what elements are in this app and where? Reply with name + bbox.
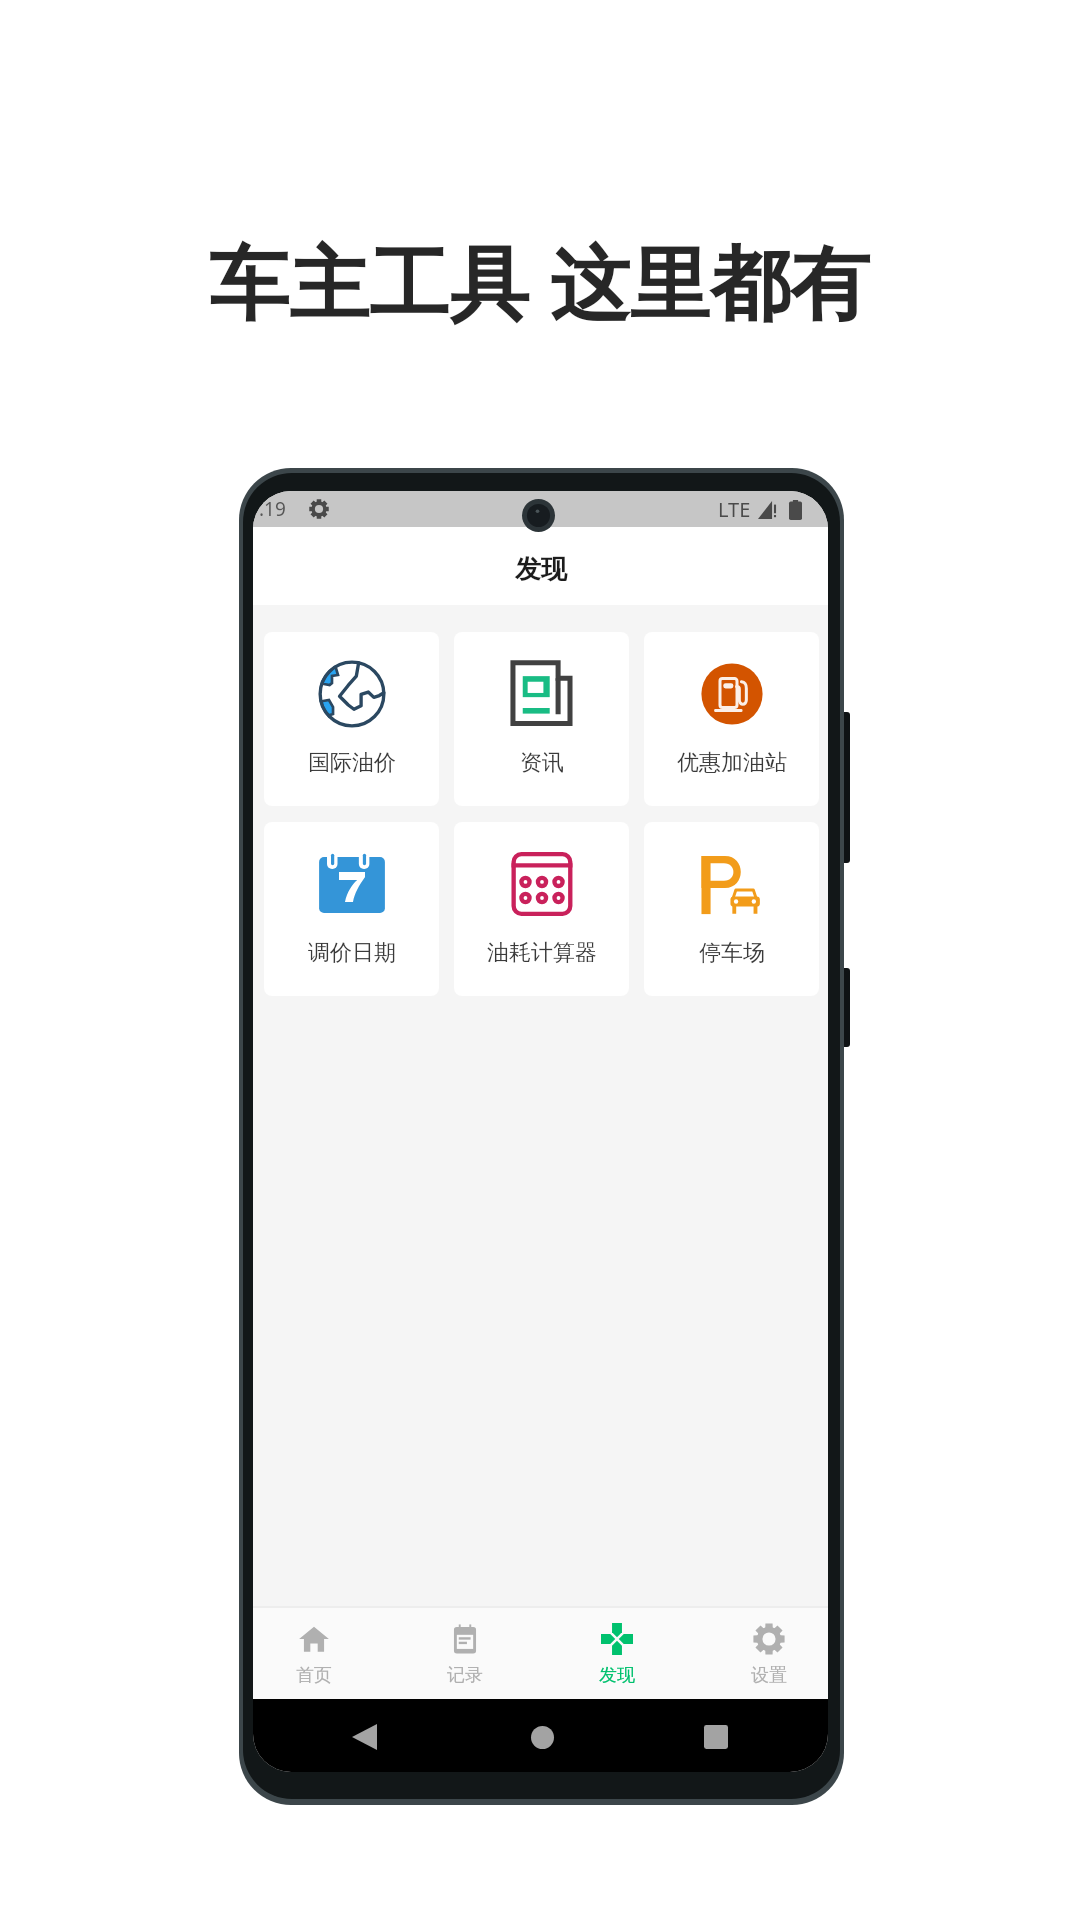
button[interactable]: Home xyxy=(516,1711,568,1763)
button[interactable]: 设置 xyxy=(697,1608,828,1699)
button[interactable]: 发现 xyxy=(545,1608,689,1699)
staticText: 停车场 xyxy=(699,939,765,967)
staticText: 设置 xyxy=(751,1664,787,1687)
staticText: 车主工具 这里都有 xyxy=(209,226,870,335)
button[interactable]: Back xyxy=(338,1711,390,1763)
button[interactable]: 国际油价 xyxy=(264,632,439,806)
staticText: 发现 xyxy=(599,1664,635,1687)
staticText: .19 xyxy=(259,496,286,522)
button[interactable]: 调价日期 xyxy=(264,822,439,996)
button[interactable]: 首页 xyxy=(253,1608,386,1699)
button[interactable]: 油耗计算器 xyxy=(454,822,629,996)
button[interactable]: 优惠加油站 xyxy=(644,632,819,806)
button[interactable]: 资讯 xyxy=(454,632,629,806)
staticText: 资讯 xyxy=(520,749,564,777)
staticText: 发现 xyxy=(515,553,567,586)
staticText: LTE xyxy=(718,496,751,523)
staticText: 优惠加油站 xyxy=(677,749,787,777)
button[interactable]: Recent apps xyxy=(690,1711,742,1763)
staticText: 调价日期 xyxy=(308,939,396,967)
button[interactable]: 记录 xyxy=(393,1608,537,1699)
staticText: 国际油价 xyxy=(308,749,396,777)
staticText: 首页 xyxy=(296,1664,332,1687)
staticText: 油耗计算器 xyxy=(487,939,597,967)
button[interactable]: 停车场 xyxy=(644,822,819,996)
staticText: 记录 xyxy=(447,1664,483,1687)
